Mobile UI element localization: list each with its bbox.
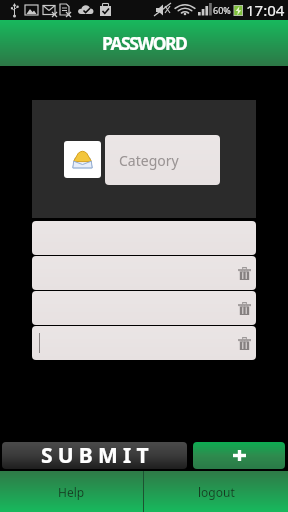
staticText: PASSWORD [102, 31, 187, 55]
button[interactable]: Delete [233, 262, 255, 284]
button[interactable]: Delete [233, 332, 255, 354]
button[interactable]: PASSWORD [0, 20, 288, 66]
staticText: 60% [213, 4, 231, 16]
button[interactable]: Category [105, 135, 220, 185]
staticText: SUBMIT [41, 442, 154, 468]
staticText: Category [119, 151, 179, 170]
staticText: 17:04 [246, 0, 285, 20]
button[interactable]: Delete [32, 291, 256, 325]
button[interactable]: Add entry [193, 442, 285, 469]
button[interactable]: Choose icon [64, 141, 101, 178]
button[interactable]: Delete [32, 256, 256, 290]
button[interactable]: logout [144, 471, 288, 512]
staticText: logout [198, 484, 235, 500]
button[interactable]: SUBMIT [2, 442, 187, 469]
staticText: Help [58, 484, 85, 500]
button[interactable]: Delete [32, 326, 256, 360]
button[interactable]: Help [0, 471, 143, 512]
button[interactable] [32, 221, 256, 255]
button[interactable]: Delete [233, 297, 255, 319]
